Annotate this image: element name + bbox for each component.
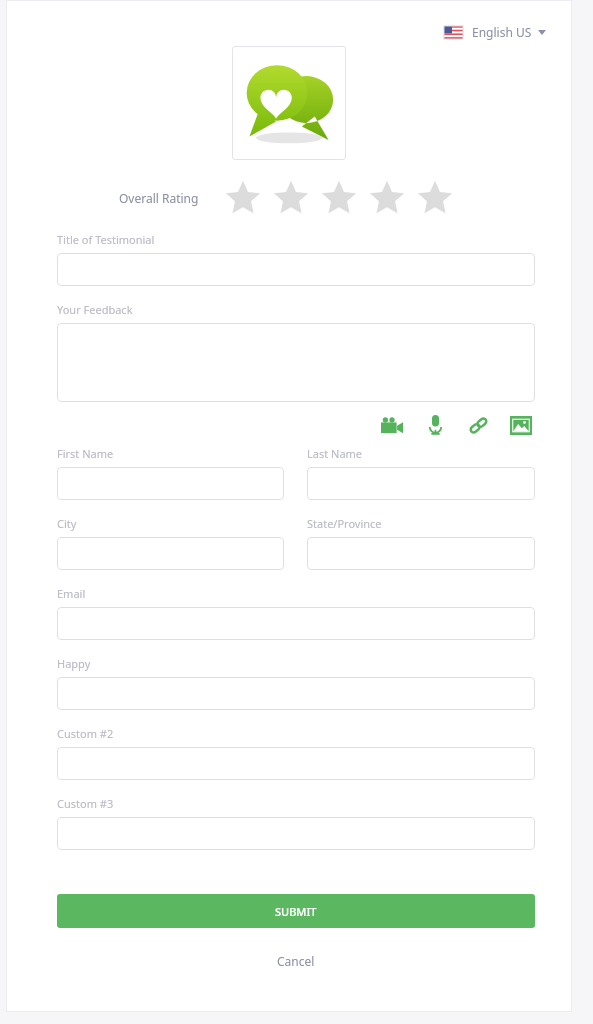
button[interactable]: Rate 3 stars [315, 176, 363, 220]
button[interactable]: Company logo [232, 46, 346, 160]
button[interactable]: Input field [57, 677, 535, 710]
button[interactable]: Cancel [263, 948, 329, 974]
staticText: Last Name [307, 446, 363, 461]
button[interactable]: Input field [57, 323, 535, 402]
button[interactable]: Input field [57, 467, 284, 500]
staticText: Custom #2 [57, 726, 114, 741]
staticText: SUBMIT [275, 904, 317, 919]
staticText: City [57, 516, 77, 531]
button[interactable]: Rate 4 stars [363, 176, 411, 220]
button[interactable]: Add link [464, 411, 492, 439]
staticText: Your Feedback [57, 302, 133, 317]
staticText: First Name [57, 446, 114, 461]
button[interactable]: Input field [57, 817, 535, 850]
button[interactable]: Rate 1 stars [219, 176, 267, 220]
button[interactable]: Input field [307, 467, 535, 500]
button[interactable]: Input field [307, 537, 535, 570]
staticText: Happy [57, 656, 91, 671]
staticText: Custom #3 [57, 796, 114, 811]
button[interactable]: Rate 5 stars [411, 176, 459, 220]
button[interactable]: Input field [57, 537, 284, 570]
button[interactable]: Input field [57, 747, 535, 780]
staticText: State/Province [307, 516, 382, 531]
button[interactable]: SUBMIT [57, 894, 535, 928]
button[interactable]: Input field [57, 607, 535, 640]
staticText: Cancel [277, 953, 315, 969]
button[interactable]: Add image [507, 411, 535, 439]
button[interactable]: Rate 2 stars [267, 176, 315, 220]
staticText: Title of Testimonial [57, 232, 155, 247]
button[interactable]: Add video [378, 411, 406, 439]
button[interactable]: Record audio [421, 411, 449, 439]
button[interactable]: Input field [57, 253, 535, 286]
button[interactable]: English US [440, 20, 550, 44]
staticText: Overall Rating [119, 190, 199, 206]
staticText: English US [472, 24, 532, 40]
staticText: Email [57, 586, 86, 601]
